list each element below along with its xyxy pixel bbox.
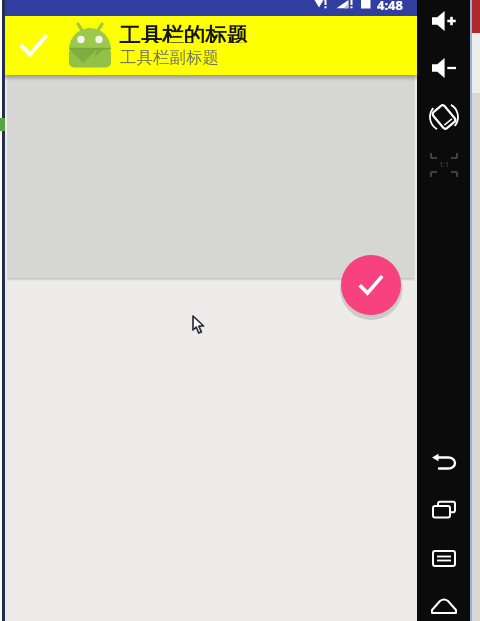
button[interactable] — [426, 494, 462, 526]
button[interactable] — [426, 446, 462, 478]
button[interactable] — [426, 52, 462, 84]
staticText: 1:1 — [439, 160, 449, 170]
button[interactable] — [426, 100, 462, 134]
button[interactable] — [426, 542, 462, 574]
staticText: 工具栏的标题 — [119, 22, 248, 43]
button[interactable] — [12, 24, 56, 68]
button[interactable] — [426, 5, 462, 37]
button[interactable]: 1:1 — [426, 148, 462, 182]
staticText: 工具栏副标题 — [120, 47, 219, 66]
staticText: 4:48 — [377, 0, 403, 12]
button[interactable] — [341, 255, 401, 315]
button[interactable] — [426, 590, 462, 621]
